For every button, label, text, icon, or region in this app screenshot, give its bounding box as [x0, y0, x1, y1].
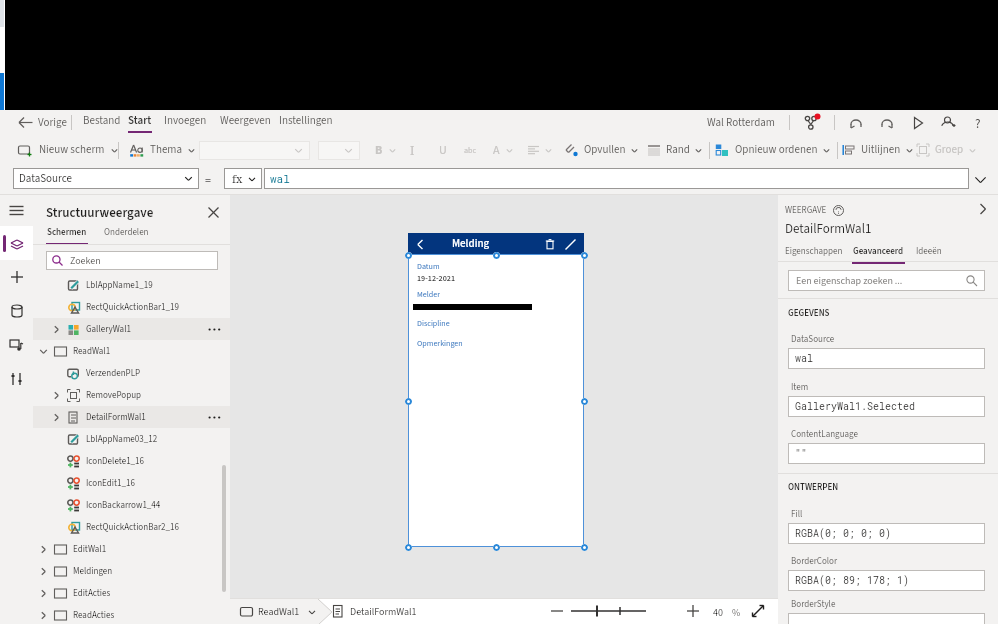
staticText: Een eigenschap zoeken ... [796, 274, 903, 288]
button[interactable]: Rail item [0, 362, 33, 396]
button[interactable]: A [491, 142, 516, 159]
button[interactable]: VerzendenPLP [33, 362, 230, 384]
button[interactable]: ReadActies [33, 604, 230, 624]
button[interactable]: Opvullen [562, 142, 641, 158]
button[interactable]: RectQuickActionBar2_16 [33, 516, 230, 538]
button[interactable]: B [373, 142, 399, 159]
button[interactable]: Undo [848, 115, 864, 131]
button[interactable]: Share [941, 115, 957, 131]
button[interactable]: Uitlijnen [840, 142, 916, 158]
staticText: RectQuickActionBar1_19 [86, 301, 180, 314]
button[interactable]: EditWal1 [33, 538, 230, 560]
button[interactable]: Rail item [0, 260, 33, 294]
button[interactable]: Groep [914, 142, 979, 158]
staticText: ReadActies [73, 609, 115, 622]
staticText: Datum [417, 261, 440, 272]
button[interactable]: Help [970, 115, 986, 131]
button[interactable]: Notifications [803, 114, 821, 132]
button[interactable]: Expand formula bar [971, 170, 990, 189]
staticText: Melder [417, 289, 441, 300]
button[interactable]: Invoegen [161, 110, 210, 135]
button[interactable]: Bestand [80, 110, 124, 135]
staticText: Ideeën [916, 245, 942, 258]
staticText: A [493, 142, 500, 159]
button[interactable] [788, 613, 985, 624]
button[interactable]: Schermen [46, 226, 88, 239]
button[interactable]: Rail item [0, 328, 33, 362]
staticText: Instellingen [279, 113, 333, 129]
button[interactable]: Redo [879, 115, 895, 131]
button[interactable]: More options [204, 407, 224, 427]
button[interactable]: RGBA(0; 0; 0; 0) [788, 523, 985, 544]
button[interactable]: Start [125, 110, 155, 135]
button[interactable]: Zoom out [547, 601, 567, 621]
button[interactable]: Rail item [0, 226, 33, 260]
button[interactable]: Eigenschappen [784, 245, 844, 258]
staticText: ONTWERPEN [788, 481, 839, 494]
button[interactable]: wal [264, 168, 969, 189]
button[interactable]: More options [204, 319, 224, 339]
staticText: Bestand [83, 113, 121, 129]
staticText: abc [464, 145, 477, 156]
button[interactable]: Instellingen [276, 110, 336, 135]
button[interactable]: Opnieuw ordenen [713, 142, 833, 158]
button[interactable]: wal [788, 348, 985, 369]
staticText: % [732, 606, 741, 620]
button[interactable]: RemovePopup [33, 384, 230, 406]
button[interactable] [199, 141, 310, 160]
button[interactable]: LblAppName03_12 [33, 428, 230, 450]
button[interactable]: U [437, 142, 449, 159]
button[interactable]: GalleryWal1.Selected [788, 396, 985, 417]
button[interactable]: IconDelete1_16 [33, 450, 230, 472]
button[interactable]: Een eigenschap zoeken ... [788, 270, 985, 291]
button[interactable]: Back [411, 235, 429, 253]
button[interactable]: Preview [910, 115, 926, 131]
button[interactable]: EditActies [33, 582, 230, 604]
button[interactable]: "" [788, 443, 985, 464]
button[interactable]: IconEdit1_16 [33, 472, 230, 494]
button[interactable]: Onderdelen [103, 226, 150, 239]
button[interactable]: Thema [126, 142, 199, 158]
button[interactable] [318, 141, 360, 160]
button[interactable]: Collapse panel [974, 200, 992, 218]
button[interactable]: Zoeken [46, 251, 218, 270]
staticText: RectQuickActionBar2_16 [86, 521, 180, 534]
staticText: BorderColor [791, 555, 838, 568]
button[interactable]: Fit to screen [748, 601, 768, 621]
button[interactable]: DetailFormWal1 [33, 406, 230, 428]
button[interactable]: Meldingen [33, 560, 230, 582]
button[interactable]: Ideeën [915, 245, 943, 258]
button[interactable]: RectQuickActionBar1_19 [33, 296, 230, 318]
button[interactable] [525, 143, 555, 157]
button[interactable]: Geavanceerd [852, 245, 905, 258]
button[interactable]: Nieuw scherm [15, 142, 122, 158]
staticText: DataSource [791, 333, 835, 346]
button[interactable]: Vorige [15, 110, 70, 135]
staticText: I [410, 142, 415, 158]
staticText: RGBA(0; 0; 0; 0) [795, 527, 892, 540]
button[interactable]: Weergeven [217, 110, 274, 135]
button[interactable]: ReadWal1 [237, 599, 320, 624]
button[interactable]: Delete [541, 235, 559, 253]
button[interactable]: IconBackarrow1_44 [33, 494, 230, 516]
button[interactable]: Close [202, 201, 224, 223]
button[interactable]: fx [224, 168, 262, 189]
staticText: ReadWal1 [258, 605, 300, 619]
button[interactable]: Menu [0, 195, 33, 226]
button[interactable]: GalleryWal1 [33, 318, 230, 340]
button[interactable]: Zoom in [683, 601, 703, 621]
button[interactable]: RGBA(0; 89; 178; 1) [788, 570, 985, 591]
button[interactable]: ReadWal1 [33, 340, 230, 362]
button[interactable]: DetailFormWal1 [329, 599, 420, 624]
staticText: Opvullen [584, 142, 626, 158]
button[interactable]: DataSource [13, 168, 199, 189]
button[interactable]: Rail item [0, 294, 33, 328]
button[interactable]: Edit [561, 235, 579, 253]
staticText: LblAppName1_19 [86, 279, 153, 292]
staticText: GalleryWal1 [86, 323, 131, 336]
button[interactable]: LblAppName1_19 [33, 274, 230, 296]
staticText: GalleryWal1.Selected [795, 400, 916, 413]
staticText: Groep [935, 142, 964, 158]
button[interactable]: Rand [645, 142, 705, 158]
staticText: Melding [452, 236, 490, 252]
